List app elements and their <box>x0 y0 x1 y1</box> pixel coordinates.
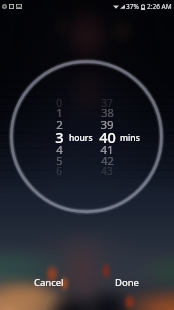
staticText: 2 <box>56 117 63 133</box>
button[interactable]: 39 <box>94 117 120 133</box>
staticText: 5 <box>56 153 63 168</box>
button[interactable]: 43 <box>94 163 120 179</box>
staticText: 43 <box>101 164 113 178</box>
button[interactable]: 38 <box>94 104 120 120</box>
staticText: mins <box>120 132 140 144</box>
button[interactable]: 4 <box>46 142 72 158</box>
button[interactable]: Cancel <box>29 275 69 290</box>
staticText: Cancel <box>34 276 64 289</box>
button[interactable]: 40 <box>94 127 120 143</box>
button[interactable]: 1 <box>46 104 72 120</box>
staticText: 3 <box>55 127 64 143</box>
button[interactable]: 6 <box>46 163 72 179</box>
staticText: Done <box>115 276 139 289</box>
staticText: 4 <box>56 142 63 158</box>
staticText: 0 <box>56 96 62 110</box>
staticText: 37% <box>126 2 139 11</box>
button[interactable]: 3 <box>46 127 72 143</box>
staticText: 40 <box>99 127 116 143</box>
staticText: 42 <box>101 153 114 168</box>
button[interactable]: 5 <box>46 152 72 168</box>
staticText: 6 <box>56 164 62 178</box>
staticText: 41 <box>100 142 114 158</box>
button[interactable]: Done <box>109 275 145 290</box>
staticText: 39 <box>100 117 114 133</box>
button[interactable]: 41 <box>94 142 120 158</box>
button[interactable]: 2 <box>46 117 72 133</box>
button[interactable]: 37 <box>94 95 120 111</box>
staticText: 38 <box>101 105 114 120</box>
staticText: 37 <box>101 96 113 110</box>
button[interactable]: 42 <box>94 152 120 168</box>
staticText: 1 <box>56 105 63 120</box>
button[interactable]: 0 <box>46 95 72 111</box>
staticText: hours <box>69 132 93 144</box>
staticText: 2:26 AM <box>147 2 172 11</box>
